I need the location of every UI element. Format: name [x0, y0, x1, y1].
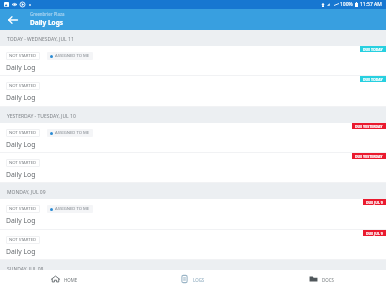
- staticText: HOME: [64, 277, 78, 283]
- staticText: DUE TODAY: [363, 77, 383, 82]
- staticText: NOT STARTED: [9, 83, 37, 89]
- staticText: DUE TODAY: [363, 47, 383, 52]
- staticText: NOT STARTED: [9, 53, 37, 59]
- button[interactable]: NOT STARTED: [0, 199, 386, 230]
- button[interactable]: LOGS: [128, 270, 257, 290]
- staticText: NOT STARTED: [9, 160, 37, 166]
- staticText: Daily Log: [6, 170, 36, 179]
- staticText: NOT STARTED: [9, 130, 37, 136]
- staticText: TODAY - WEDNESDAY, JUL 11: [7, 36, 74, 43]
- staticText: Daily Log: [6, 247, 36, 256]
- button[interactable]: NOT STARTED: [0, 230, 386, 260]
- staticText: DUE JUL 9: [366, 231, 383, 236]
- button[interactable]: HOME: [0, 270, 128, 290]
- staticText: Daily Log: [6, 93, 36, 102]
- staticText: Daily Log: [6, 140, 36, 149]
- staticText: ASSIGNED TO ME: [55, 53, 90, 59]
- staticText: Daily Logs: [30, 18, 64, 27]
- staticText: 11:57 AM: [360, 1, 382, 8]
- staticText: YESTERDAY - TUESDAY, JUL 10: [7, 113, 76, 120]
- button[interactable]: NOT STARTED: [0, 46, 386, 76]
- staticText: DUE JUL 9: [366, 200, 383, 205]
- staticText: DUE YESTERDAY: [355, 154, 383, 159]
- staticText: LOGS: [193, 277, 205, 283]
- button[interactable]: Back: [5, 12, 20, 27]
- staticText: 100%: [340, 1, 353, 8]
- button[interactable]: NOT STARTED: [0, 123, 386, 153]
- button[interactable]: NOT STARTED: [0, 153, 386, 183]
- staticText: Greenbrier Plaza: [30, 11, 65, 17]
- staticText: Daily Log: [6, 216, 36, 225]
- staticText: DUE YESTERDAY: [355, 124, 383, 129]
- staticText: DOCS: [322, 277, 334, 283]
- staticText: ASSIGNED TO ME: [55, 206, 90, 212]
- staticText: ASSIGNED TO ME: [55, 130, 90, 136]
- button[interactable]: NOT STARTED: [0, 76, 386, 107]
- staticText: SUNDAY, JUL 08: [7, 266, 44, 270]
- staticText: NOT STARTED: [9, 237, 37, 243]
- staticText: Daily Log: [6, 63, 36, 72]
- button[interactable]: DOCS: [257, 270, 386, 290]
- staticText: MONDAY, JUL 09: [7, 189, 46, 196]
- staticText: NOT STARTED: [9, 206, 37, 212]
